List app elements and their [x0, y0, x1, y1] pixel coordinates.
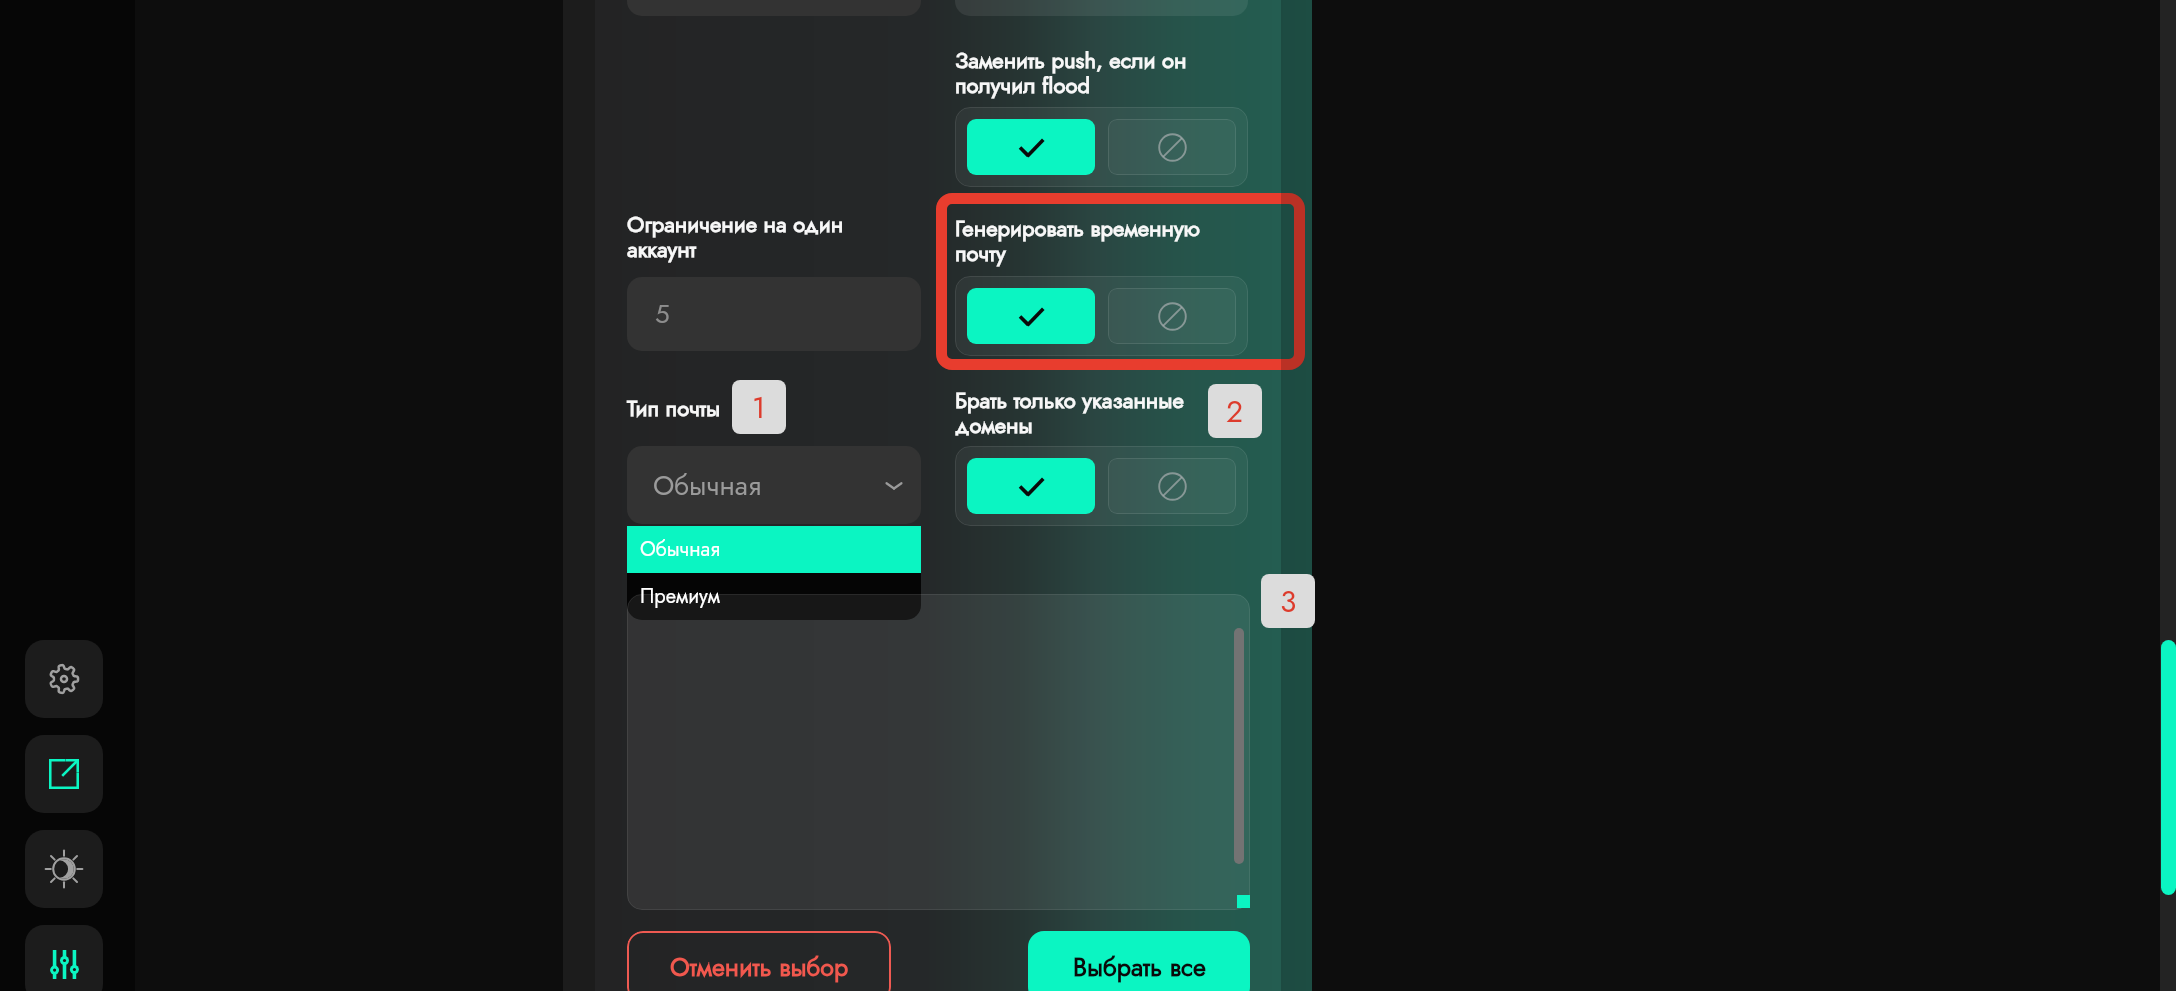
staticText: Генерировать временную почту [955, 212, 1201, 270]
button[interactable]: Domains list [627, 594, 1250, 910]
button[interactable]: Theme [25, 830, 103, 908]
staticText: 1 [752, 386, 766, 429]
button[interactable]: Disabled [1108, 288, 1236, 344]
button[interactable]: Enabled [967, 288, 1095, 344]
button[interactable]: Open in new window [25, 735, 103, 813]
button[interactable]: Обычная [627, 526, 921, 573]
button[interactable]: Отменить выбор [627, 931, 891, 991]
staticText: Заменить push, если он получил flood [955, 44, 1187, 102]
button[interactable]: Enabled [967, 458, 1095, 514]
button[interactable]: Выбрать все [1028, 931, 1250, 991]
staticText: Тип почты [627, 392, 721, 424]
staticText: Обычная [640, 535, 720, 564]
staticText: Ограничение на один аккаунт [627, 208, 844, 266]
staticText: Обычная [653, 466, 761, 505]
staticText: 3 [1280, 580, 1297, 623]
button[interactable]: Mail type [627, 446, 921, 524]
staticText: 5 [655, 295, 670, 333]
staticText: Премиум [640, 582, 720, 611]
button[interactable]: Disabled [1108, 458, 1236, 514]
button[interactable]: Account limit [627, 277, 921, 351]
staticText: Выбрать все [1073, 949, 1206, 985]
staticText: Брать только указанные домены [955, 384, 1184, 442]
button[interactable]: Filters [25, 925, 103, 991]
staticText: Отменить выбор [670, 949, 849, 985]
staticText: 2 [1226, 390, 1244, 433]
button[interactable]: Enabled [967, 119, 1095, 175]
button[interactable]: Disabled [1108, 119, 1236, 175]
button[interactable]: Премиум [627, 573, 921, 620]
button[interactable]: Settings [25, 640, 103, 718]
